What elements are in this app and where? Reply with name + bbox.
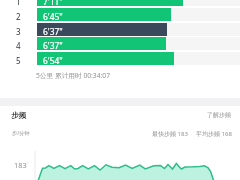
staticText: 平均步频 168	[196, 130, 232, 138]
staticText: 2	[16, 11, 21, 22]
staticText: 了解步频	[207, 111, 231, 119]
staticText: 7'11"	[43, 0, 63, 7]
button[interactable]: 2	[0, 8, 240, 21]
button[interactable]: 4	[0, 37, 240, 50]
staticText: 最快步频 183	[152, 130, 188, 138]
staticText: 6'54"	[43, 55, 63, 66]
staticText: 3	[16, 26, 21, 37]
button[interactable]: 了解步频	[207, 111, 231, 119]
staticText: 6'37"	[43, 40, 63, 51]
staticText: 6'37"	[43, 26, 63, 37]
staticText: 4	[16, 40, 21, 51]
staticText: 5	[16, 55, 21, 66]
staticText: 步/分钟	[12, 129, 30, 136]
button[interactable]: 3	[0, 23, 240, 36]
staticText: 6'45"	[43, 11, 63, 22]
staticText: 1	[16, 0, 21, 7]
staticText: 183	[14, 160, 27, 170]
button[interactable]: 1	[0, 0, 240, 6]
staticText: 步频	[11, 111, 27, 121]
staticText: 5公里 累计用时 00:34:07	[36, 71, 110, 80]
button[interactable]: 5	[0, 52, 240, 65]
